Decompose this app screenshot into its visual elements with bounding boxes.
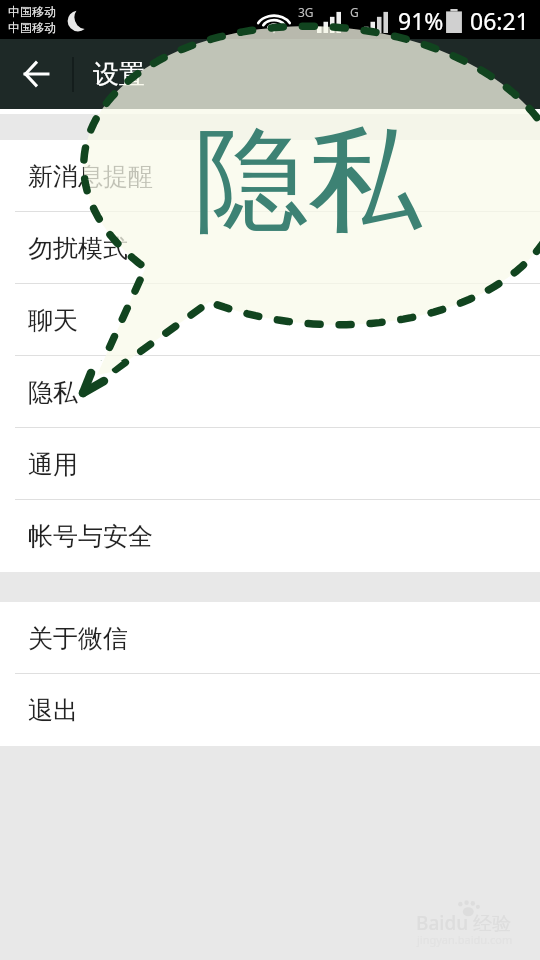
button[interactable]: Back [0,39,72,109]
staticText: 聊天 [28,305,78,336]
staticText: 隐私 [28,377,78,408]
staticText: 勿扰模式 [28,233,128,264]
staticText: 06:21 [470,5,529,36]
staticText: 中国移动 [8,20,56,35]
staticText: 91% [398,5,444,36]
staticText: Baidu 经验 [416,910,512,936]
staticText: 新消息提醒 [28,161,153,192]
staticText: 设置 [93,58,145,91]
button[interactable]: 隐私 [0,356,540,428]
staticText: 中国移动 [8,4,56,19]
button[interactable]: 聊天 [0,284,540,356]
button[interactable]: 帐号与安全 [0,500,540,572]
button[interactable]: 关于微信 [0,602,540,674]
button[interactable]: 通用 [0,428,540,500]
staticText: G [350,4,359,20]
staticText: 关于微信 [28,623,128,654]
staticText: 3G [298,4,314,20]
staticText: 通用 [28,449,78,480]
button[interactable]: 新消息提醒 [0,140,540,212]
staticText: 帐号与安全 [28,521,153,552]
button[interactable]: 勿扰模式 [0,212,540,284]
staticText: 退出 [28,695,78,726]
button[interactable]: 退出 [0,674,540,746]
staticText: 隐私 [194,109,422,253]
